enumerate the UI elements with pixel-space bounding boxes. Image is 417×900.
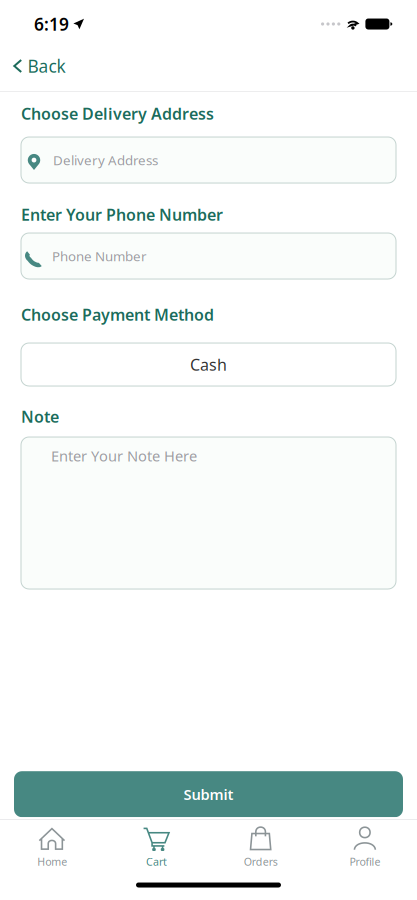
button[interactable]: Delivery Address (21, 137, 396, 183)
staticText: Submit (183, 784, 233, 804)
button[interactable]: Home (0, 826, 104, 868)
button[interactable]: Submit (14, 771, 403, 817)
button[interactable]: Enter Your Note Here (21, 437, 396, 589)
button[interactable]: Phone Number (21, 233, 396, 279)
staticText: Choose Delivery Address (21, 103, 214, 124)
staticText: Phone Number (52, 247, 147, 265)
staticText: Enter Your Note Here (51, 446, 197, 465)
staticText: Enter Your Phone Number (21, 204, 223, 225)
staticText: Note (21, 406, 59, 427)
button[interactable]: Back (0, 48, 77, 84)
button[interactable]: Cash (21, 343, 396, 386)
staticText: Back (27, 54, 65, 77)
staticText: Delivery Address (53, 151, 158, 169)
staticText: Choose Payment Method (21, 304, 214, 325)
staticText: 6:19 (34, 12, 69, 35)
staticText: Cart (146, 854, 167, 869)
button[interactable]: Orders (208, 826, 313, 868)
staticText: Orders (244, 854, 278, 869)
staticText: Profile (349, 854, 380, 869)
staticText: Cash (190, 354, 227, 375)
button[interactable]: Cart (104, 826, 208, 868)
staticText: Home (37, 854, 67, 869)
button[interactable]: Profile (313, 826, 417, 868)
